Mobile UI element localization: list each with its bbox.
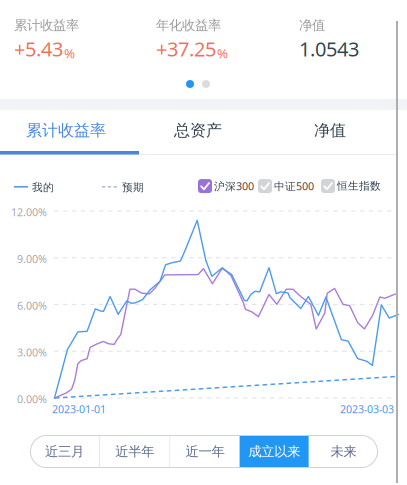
button[interactable]: 总资产 bbox=[132, 110, 264, 151]
staticText: 2023-01-01 bbox=[52, 402, 106, 416]
staticText: 近三月 bbox=[45, 443, 84, 460]
staticText: 净值 bbox=[314, 121, 346, 140]
staticText: 累计收益率 bbox=[26, 121, 106, 140]
staticText: 累计收益率 bbox=[14, 17, 79, 33]
staticText: 总资产 bbox=[174, 121, 222, 140]
button[interactable]: 沪深300 bbox=[198, 179, 254, 193]
staticText: 9.00% bbox=[17, 252, 47, 266]
staticText: +37.25 bbox=[156, 35, 216, 62]
staticText: 0.00% bbox=[17, 392, 47, 406]
button[interactable]: 恒生指数 bbox=[321, 179, 381, 193]
staticText: 1.0543 bbox=[299, 35, 359, 62]
staticText: 沪深300 bbox=[214, 179, 254, 193]
button[interactable]: 中证500 bbox=[258, 179, 314, 193]
staticText: 中证500 bbox=[274, 179, 314, 193]
button[interactable]: 近半年 bbox=[100, 435, 169, 468]
staticText: 近一年 bbox=[185, 443, 224, 460]
staticText: 3.00% bbox=[17, 345, 47, 359]
staticText: % bbox=[64, 44, 75, 62]
staticText: 12.00% bbox=[11, 205, 47, 219]
button[interactable]: 未来 bbox=[309, 435, 378, 468]
staticText: 净值 bbox=[299, 17, 325, 33]
button[interactable]: 近三月 bbox=[30, 435, 99, 468]
staticText: 年化收益率 bbox=[156, 17, 221, 33]
button[interactable]: 近一年 bbox=[170, 435, 240, 468]
button[interactable]: 累计收益率 bbox=[0, 110, 132, 151]
staticText: 2023-03-03 bbox=[340, 402, 394, 416]
staticText: 6.00% bbox=[17, 298, 47, 313]
staticText: % bbox=[217, 44, 228, 62]
staticText: +5.43 bbox=[14, 35, 63, 62]
button[interactable]: 成立以来 bbox=[240, 435, 309, 468]
staticText: 预期 bbox=[122, 181, 144, 194]
staticText: 未来 bbox=[330, 443, 356, 460]
staticText: 恒生指数 bbox=[337, 179, 381, 192]
button[interactable]: 净值 bbox=[264, 110, 396, 151]
staticText: 我的 bbox=[32, 181, 54, 194]
staticText: 近半年 bbox=[115, 443, 154, 460]
staticText: 成立以来 bbox=[248, 443, 300, 460]
